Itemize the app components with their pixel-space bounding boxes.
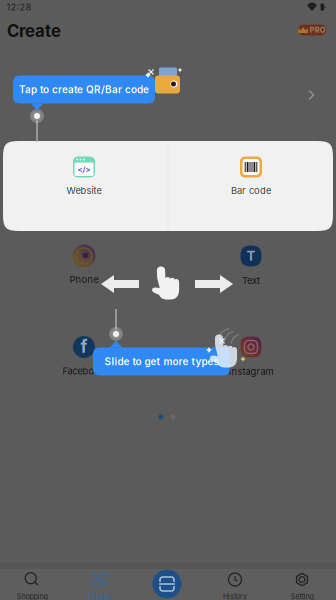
staticText: History (223, 592, 247, 600)
staticText: Facebook (62, 365, 105, 377)
staticText: f (80, 336, 87, 357)
staticText: Setting (290, 592, 313, 600)
button[interactable]: </> (24, 156, 144, 195)
button[interactable]: Phone (24, 244, 144, 284)
staticText: 12:28 (6, 1, 31, 13)
button[interactable]: Create (67, 571, 131, 600)
staticText: </> (77, 165, 90, 174)
staticText: T (246, 248, 255, 264)
button[interactable]: Bar code (191, 156, 311, 195)
button[interactable]: Shopping (0, 571, 64, 600)
button[interactable]: T (191, 245, 311, 285)
button[interactable]: f (24, 336, 144, 376)
button[interactable]: Setting (270, 571, 334, 600)
staticText: Bar code (231, 185, 271, 196)
staticText: PRO (310, 26, 326, 34)
staticText: Shopping (16, 592, 47, 600)
staticText: Slide to get more types (104, 355, 218, 368)
staticText: Create (88, 592, 110, 600)
button[interactable]: Instagram (191, 336, 311, 376)
staticText: Phone (69, 274, 98, 285)
staticText: Tap to create QR/Bar code (19, 83, 149, 96)
staticText: Text (242, 275, 260, 286)
staticText: Website (66, 185, 101, 196)
staticText: Create (7, 21, 61, 41)
button[interactable]: History (203, 571, 267, 600)
button[interactable]: Scan (152, 569, 181, 598)
staticText: Instagram (228, 366, 273, 377)
button[interactable]: PRO (298, 24, 326, 35)
